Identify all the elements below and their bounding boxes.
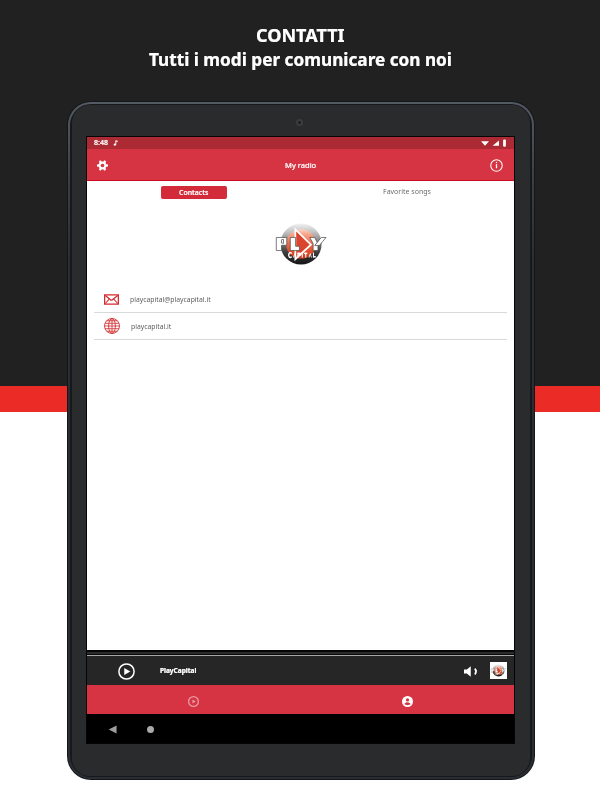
staticText: Tutti i modi per comunicare con noi xyxy=(149,48,452,71)
staticText: Favorite songs xyxy=(383,187,431,197)
button[interactable]: playcapital@playcapital.it xyxy=(87,286,514,312)
button[interactable]: Account xyxy=(300,685,514,714)
button[interactable]: Back xyxy=(104,721,120,737)
button[interactable]: Settings xyxy=(92,155,112,175)
button[interactable]: Info xyxy=(486,155,506,175)
button[interactable]: Player xyxy=(87,685,300,714)
staticText: playcapital@playcapital.it xyxy=(130,295,211,304)
button[interactable]: Volume xyxy=(460,661,480,681)
button[interactable]: Play xyxy=(116,661,136,681)
button[interactable]: Favorite songs xyxy=(300,181,514,203)
staticText: My radio xyxy=(285,160,317,170)
staticText: Contacts xyxy=(179,188,209,198)
button[interactable]: playcapital.it xyxy=(87,313,514,339)
button[interactable]: Home xyxy=(142,721,158,737)
staticText: CONTATTI xyxy=(256,23,345,48)
button[interactable]: Station logo xyxy=(490,662,507,679)
button[interactable]: Contacts xyxy=(161,186,227,199)
staticText: 8:48 xyxy=(94,138,108,148)
staticText: PlayCapital xyxy=(160,666,197,675)
staticText: playcapital.it xyxy=(131,322,172,331)
